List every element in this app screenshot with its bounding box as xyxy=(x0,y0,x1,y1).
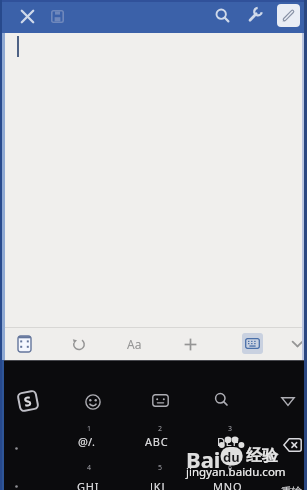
button[interactable] xyxy=(287,328,307,360)
button[interactable]: ABC xyxy=(124,425,190,457)
button[interactable] xyxy=(1,466,31,490)
staticText: 5 xyxy=(158,463,163,473)
staticText: 4 xyxy=(87,463,92,473)
button[interactable] xyxy=(277,4,300,27)
button[interactable]: GHI xyxy=(55,471,121,490)
staticText: 重输 xyxy=(281,485,302,490)
staticText: DEF xyxy=(217,434,240,449)
staticText: 1 xyxy=(87,424,92,434)
button[interactable] xyxy=(12,1,42,31)
staticText: 经验 xyxy=(246,446,278,466)
staticText: GHI xyxy=(77,479,100,490)
button[interactable] xyxy=(8,328,40,360)
staticText: JKL xyxy=(150,479,168,490)
staticText: @/. xyxy=(78,434,95,449)
button[interactable] xyxy=(240,0,270,30)
button[interactable] xyxy=(242,333,263,354)
staticText: du xyxy=(223,448,240,466)
button[interactable] xyxy=(273,385,303,417)
button[interactable]: Aa xyxy=(118,328,150,360)
staticText: ABC xyxy=(145,434,169,449)
button[interactable] xyxy=(63,328,95,360)
button[interactable] xyxy=(174,328,206,360)
staticText: S xyxy=(22,391,34,411)
staticText: jingyan.baidu.com xyxy=(186,464,286,480)
button[interactable]: JKL xyxy=(126,471,192,490)
staticText: Bai xyxy=(186,444,221,468)
staticText: 3 xyxy=(228,424,233,434)
button[interactable] xyxy=(42,1,72,31)
button[interactable] xyxy=(205,383,237,415)
button[interactable]: DEF xyxy=(195,425,261,457)
button[interactable]: @/. xyxy=(53,425,119,457)
button[interactable] xyxy=(1,428,31,468)
button[interactable]: S xyxy=(11,384,45,418)
button[interactable] xyxy=(277,427,307,463)
staticText: 6 xyxy=(228,463,233,473)
staticText: MNO xyxy=(213,479,243,490)
staticText: 2 xyxy=(158,424,163,434)
button[interactable] xyxy=(144,384,176,416)
button[interactable] xyxy=(77,386,109,418)
button[interactable]: 重输 xyxy=(275,476,307,490)
button[interactable]: MNO xyxy=(195,471,261,490)
button[interactable] xyxy=(207,0,237,30)
staticText: Aa xyxy=(127,336,142,352)
